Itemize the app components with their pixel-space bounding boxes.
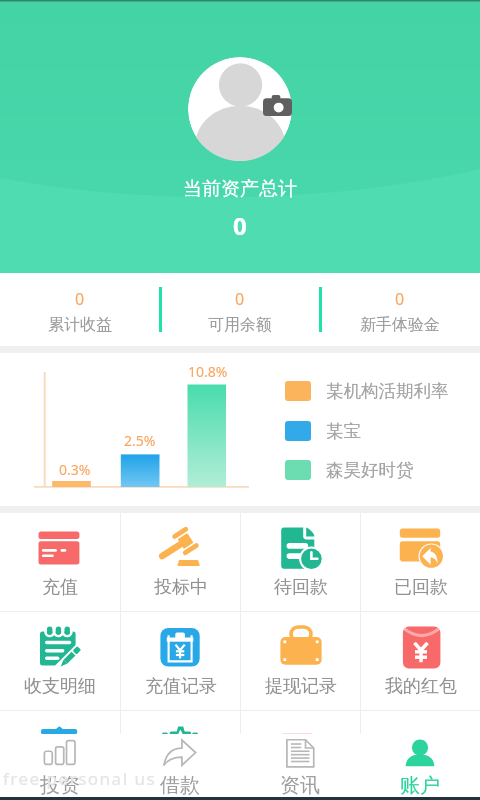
button[interactable]: Change profile photo xyxy=(188,57,292,161)
staticText: 2.5% xyxy=(124,431,156,450)
staticText: 已回款 xyxy=(394,576,448,599)
staticText: 某宝 xyxy=(326,420,361,442)
button[interactable]: 投资 xyxy=(0,734,120,800)
staticText: 账户 xyxy=(400,773,440,798)
staticText: 0 xyxy=(235,288,245,310)
staticText: 待回款 xyxy=(274,576,328,599)
button[interactable]: 收支明细 xyxy=(0,612,120,710)
staticText: free personal us xyxy=(3,767,157,790)
staticText: 10.8% xyxy=(188,362,228,381)
staticText: 投资 xyxy=(40,773,80,798)
staticText: 某机构活期利率 xyxy=(326,380,449,402)
staticText: 可用余额 xyxy=(208,315,272,335)
button[interactable]: 借款 xyxy=(120,734,240,800)
button[interactable]: 待回款 xyxy=(241,513,360,611)
staticText: 收支明细 xyxy=(24,675,96,698)
button[interactable]: 我的红包 xyxy=(361,612,480,710)
staticText: 当前资产总计 xyxy=(183,177,297,201)
staticText: 我的红包 xyxy=(385,675,457,698)
button[interactable]: 提现记录 xyxy=(241,612,360,710)
staticText: 充值记录 xyxy=(145,675,217,698)
button[interactable]: 已回款 xyxy=(361,513,480,611)
staticText: 资讯 xyxy=(280,773,320,798)
button[interactable]: 充值 xyxy=(0,513,120,611)
button[interactable]: 投标中 xyxy=(121,513,240,611)
staticText: 0 xyxy=(233,209,247,242)
button[interactable]: 账户 xyxy=(360,734,480,800)
staticText: 0 xyxy=(395,288,405,310)
button[interactable]: 某宝 xyxy=(285,420,361,442)
staticText: 提现记录 xyxy=(265,675,337,698)
button[interactable]: 森昊好时贷 xyxy=(285,459,414,481)
button[interactable]: 我的债权 xyxy=(241,711,360,734)
button[interactable]: 某机构活期利率 xyxy=(285,380,449,402)
button[interactable]: 0 xyxy=(320,273,480,346)
staticText: 累计收益 xyxy=(48,315,112,335)
button[interactable]: 充值记录 xyxy=(121,612,240,710)
staticText: 0 xyxy=(75,288,85,310)
button[interactable]: 资讯 xyxy=(240,734,360,800)
staticText: 借款 xyxy=(160,773,200,798)
staticText: 森昊好时贷 xyxy=(326,459,414,481)
button[interactable]: 安全保障 xyxy=(0,711,120,734)
button[interactable]: 0 xyxy=(160,273,320,346)
staticText: 新手体验金 xyxy=(360,315,440,335)
staticText: 投标中 xyxy=(154,576,208,599)
staticText: 0.3% xyxy=(59,460,91,479)
button[interactable]: 我的奖励 xyxy=(121,711,240,734)
staticText: 充值 xyxy=(42,576,78,599)
button[interactable]: 0 xyxy=(0,273,160,346)
